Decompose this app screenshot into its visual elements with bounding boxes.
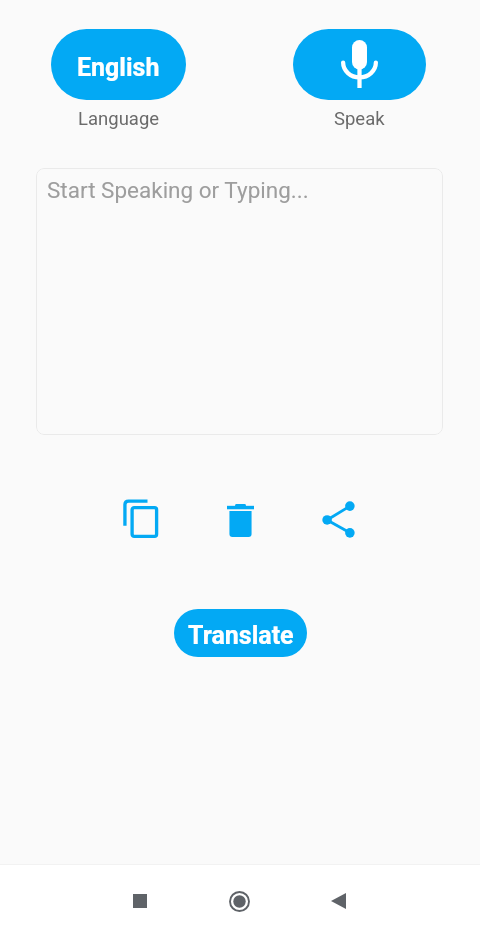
button[interactable]: Start Speaking or Typing...: [36, 168, 443, 435]
button[interactable]: Back: [314, 877, 362, 925]
staticText: Start Speaking or Typing...: [47, 177, 309, 203]
button[interactable]: Delete: [216, 493, 264, 541]
button[interactable]: English: [51, 29, 186, 100]
button[interactable]: Copy: [116, 493, 164, 541]
button[interactable]: Translate: [174, 609, 307, 657]
staticText: Translate: [188, 621, 294, 650]
staticText: Speak: [334, 108, 385, 130]
button[interactable]: Speak: [293, 29, 426, 100]
staticText: English: [77, 53, 160, 82]
button[interactable]: Share: [314, 493, 362, 541]
staticText: Language: [78, 108, 160, 130]
button[interactable]: Recent apps: [116, 877, 164, 925]
button[interactable]: Home: [215, 877, 263, 925]
